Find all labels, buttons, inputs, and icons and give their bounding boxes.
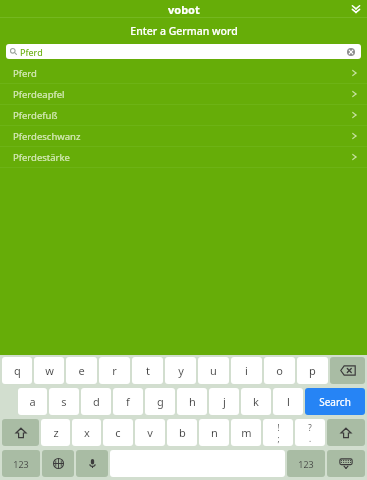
- button[interactable]: ! ;: [263, 419, 293, 446]
- staticText: t: [146, 363, 150, 378]
- staticText: 123: [298, 458, 314, 470]
- button[interactable]: Shift: [327, 419, 365, 446]
- button[interactable]: e: [66, 357, 97, 384]
- button[interactable]: i: [231, 357, 262, 384]
- staticText: m: [241, 425, 252, 440]
- button[interactable]: v: [135, 419, 165, 446]
- button[interactable]: f: [113, 388, 143, 415]
- button[interactable]: t: [132, 357, 163, 384]
- button[interactable]: Search: [305, 388, 365, 415]
- button[interactable]: k: [241, 388, 271, 415]
- staticText: b: [179, 425, 186, 440]
- staticText: Pferdestärke: [13, 151, 70, 164]
- staticText: 123: [13, 458, 29, 470]
- staticText: d: [93, 394, 100, 409]
- button[interactable]: y: [165, 357, 196, 384]
- button[interactable]: Change keyboard: [42, 450, 74, 477]
- staticText: l: [287, 394, 290, 409]
- staticText: Pferd: [20, 46, 43, 58]
- staticText: n: [211, 425, 218, 440]
- button[interactable]: Clear text: [345, 46, 357, 58]
- staticText: Pferdeschwanz: [13, 130, 81, 143]
- button[interactable]: Voice input: [76, 450, 108, 477]
- button[interactable]: u: [198, 357, 229, 384]
- button[interactable]: Shift: [2, 419, 39, 446]
- button[interactable]: Pferd: [0, 63, 367, 83]
- staticText: o: [276, 363, 283, 378]
- button[interactable]: j: [209, 388, 239, 415]
- staticText: u: [210, 363, 217, 378]
- button[interactable]: Pferdefuß: [0, 105, 367, 125]
- button[interactable]: r: [99, 357, 130, 384]
- staticText: p: [309, 363, 316, 378]
- button[interactable]: ? .: [295, 419, 325, 446]
- button[interactable]: q: [2, 357, 32, 384]
- staticText: h: [189, 394, 196, 409]
- staticText: x: [84, 425, 90, 440]
- staticText: ! ;: [277, 422, 280, 444]
- button[interactable]: z: [41, 419, 70, 446]
- button[interactable]: w: [34, 357, 64, 384]
- button[interactable]: g: [145, 388, 175, 415]
- button[interactable]: h: [177, 388, 207, 415]
- staticText: Pferd: [13, 67, 37, 80]
- button[interactable]: Pferdestärke: [0, 147, 367, 167]
- button[interactable]: Backspace: [330, 357, 365, 384]
- staticText: f: [126, 394, 130, 409]
- staticText: s: [61, 394, 67, 409]
- staticText: g: [157, 394, 164, 409]
- staticText: c: [115, 425, 121, 440]
- staticText: vobot: [168, 2, 200, 17]
- staticText: z: [53, 425, 59, 440]
- staticText: a: [29, 394, 36, 409]
- button[interactable]: Pferd: [6, 44, 361, 59]
- staticText: q: [14, 363, 21, 378]
- staticText: ? .: [308, 422, 312, 444]
- button[interactable]: o: [264, 357, 295, 384]
- button[interactable]: x: [72, 419, 101, 446]
- button[interactable]: Hide keyboard: [327, 450, 365, 477]
- staticText: i: [245, 363, 248, 378]
- staticText: Pferdefuß: [13, 109, 58, 122]
- staticText: v: [147, 425, 153, 440]
- button[interactable]: Pferdeapfel: [0, 84, 367, 104]
- button[interactable]: l: [273, 388, 303, 415]
- button[interactable]: c: [103, 419, 133, 446]
- button[interactable]: d: [81, 388, 111, 415]
- staticText: Search: [319, 395, 351, 409]
- button[interactable]: Pferdeschwanz: [0, 126, 367, 146]
- button[interactable]: n: [199, 419, 229, 446]
- button[interactable]: s: [49, 388, 79, 415]
- staticText: Pferdeapfel: [13, 88, 65, 101]
- button[interactable]: 123: [287, 450, 325, 477]
- button[interactable]: 123: [2, 450, 40, 477]
- staticText: k: [253, 394, 259, 409]
- staticText: Enter a German word: [130, 24, 238, 38]
- button[interactable]: p: [297, 357, 328, 384]
- staticText: y: [178, 363, 184, 378]
- staticText: e: [78, 363, 85, 378]
- button[interactable]: a: [18, 388, 47, 415]
- staticText: j: [223, 394, 226, 409]
- button[interactable]: b: [167, 419, 197, 446]
- staticText: w: [45, 363, 54, 378]
- button[interactable]: Collapse: [345, 0, 367, 18]
- staticText: r: [112, 363, 117, 378]
- button[interactable]: m: [231, 419, 261, 446]
